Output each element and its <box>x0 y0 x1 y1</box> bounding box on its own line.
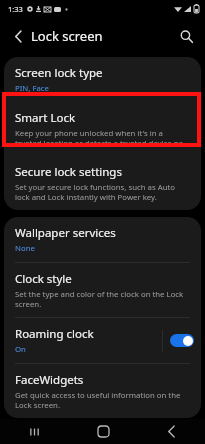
staticText: FaceWidgets <box>15 372 84 388</box>
button[interactable]: Recent apps <box>0 419 69 444</box>
staticText: Set your secure lock functions, such as … <box>15 182 190 202</box>
staticText: Wallpaper services <box>15 225 116 241</box>
button[interactable]: Navigate up <box>6 24 30 48</box>
staticText: Roaming clock <box>15 326 94 342</box>
staticText: On <box>15 344 26 355</box>
button[interactable]: Home <box>69 419 137 444</box>
staticText: Get quick access to useful information o… <box>15 390 190 410</box>
button[interactable]: Screen lock type <box>4 57 201 102</box>
staticText: None <box>15 243 35 254</box>
button[interactable]: Secure lock settings <box>4 156 201 210</box>
button[interactable]: FaceWidgets <box>4 364 201 418</box>
staticText: Set the type and color of the clock on t… <box>15 289 190 309</box>
staticText: 1:33 <box>8 4 23 14</box>
staticText: Screen lock type <box>15 65 103 81</box>
button[interactable]: Wallpaper services <box>4 217 201 262</box>
staticText: Secure lock settings <box>15 164 122 180</box>
button[interactable]: Smart Lock <box>4 102 201 156</box>
staticText: Keep your phone unlocked when it's in a … <box>15 128 190 148</box>
staticText: Smart Lock <box>15 110 76 126</box>
button[interactable]: Back <box>137 419 205 444</box>
button[interactable]: Search <box>173 23 199 49</box>
staticText: Lock screen <box>31 27 103 45</box>
button[interactable]: Clock style <box>4 263 201 317</box>
staticText: PIN, Face <box>15 83 49 94</box>
button[interactable]: Roaming clock <box>4 318 201 363</box>
staticText: Clock style <box>15 271 72 287</box>
button[interactable]: Roaming clock toggle, on <box>170 334 194 347</box>
